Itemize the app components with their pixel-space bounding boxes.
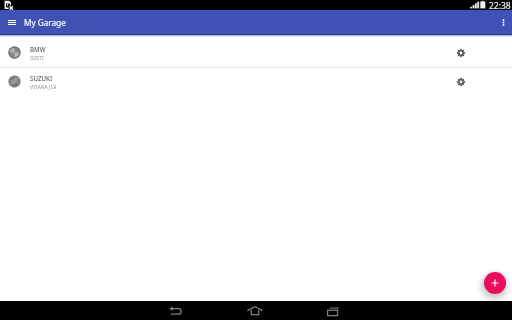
staticText: 325TI [30, 54, 44, 61]
staticText: BMW [30, 45, 46, 53]
staticText: 22:38 [489, 0, 511, 10]
staticText: My Garage [24, 17, 66, 28]
button[interactable]: Add vehicle [484, 272, 506, 294]
button[interactable]: Recent apps [313, 301, 353, 320]
button[interactable]: SUZUKI [0, 67, 512, 96]
staticText: SUZUKI [30, 74, 53, 82]
button[interactable]: Open navigation drawer [4, 15, 19, 30]
button[interactable]: More options [496, 15, 510, 29]
button[interactable]: Settings [451, 43, 471, 63]
button[interactable]: BMW [0, 38, 512, 67]
button[interactable]: Home [235, 301, 275, 320]
staticText: VITARA JLX [30, 83, 57, 90]
button[interactable]: Back [155, 301, 195, 320]
button[interactable]: Settings [451, 72, 471, 92]
